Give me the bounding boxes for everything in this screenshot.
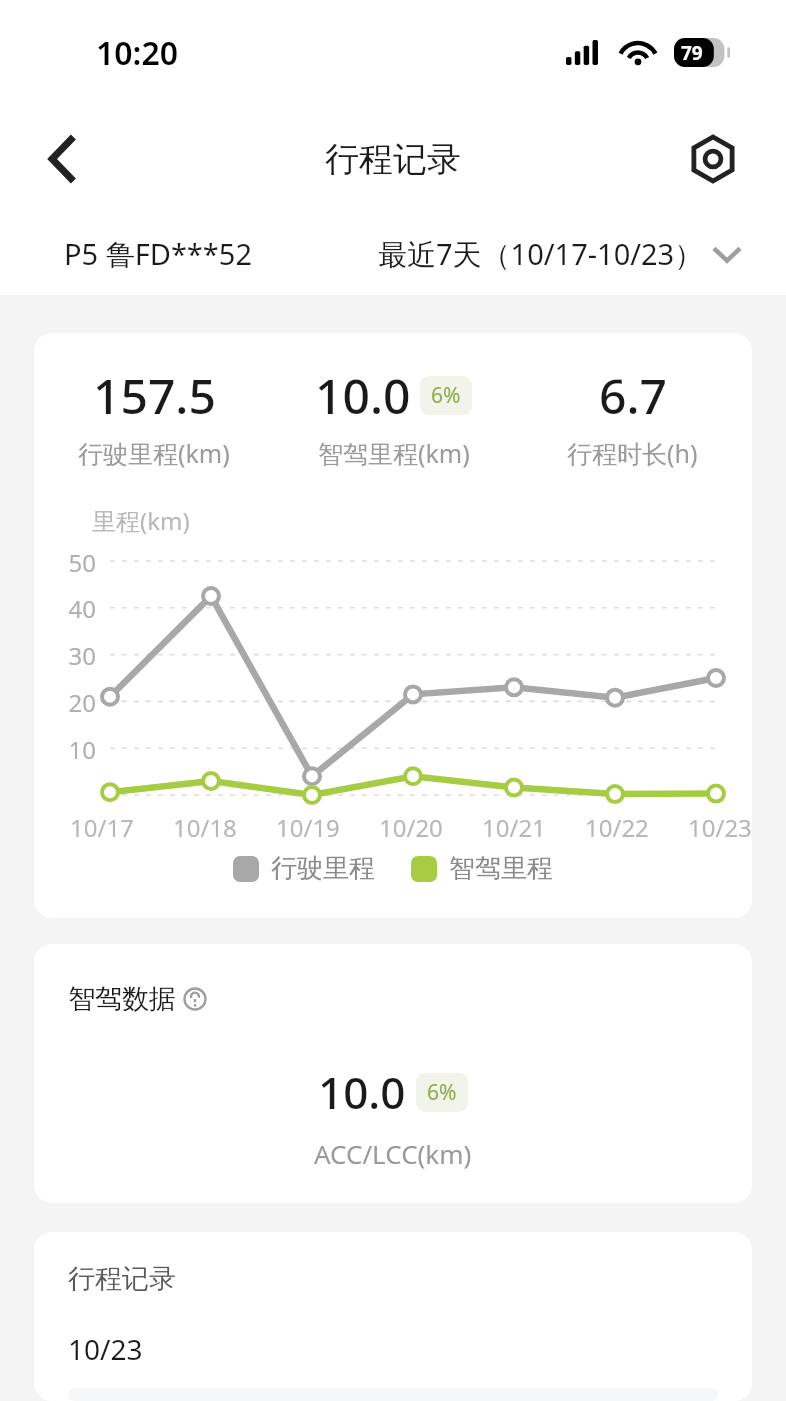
staticText: 里程(km) — [92, 504, 190, 537]
staticText: 行驶里程 — [271, 852, 375, 885]
staticText: 智驾里程 — [449, 852, 553, 885]
button[interactable]: Settings — [684, 130, 742, 188]
button[interactable]: 10.0 — [274, 363, 513, 470]
staticText: 10/18 — [173, 811, 237, 844]
staticText: 10/23 — [688, 811, 752, 844]
staticText: 最近7天（10/17-10/23） — [378, 234, 704, 274]
staticText: 50 — [34, 546, 96, 579]
button[interactable]: 智驾里程 — [411, 852, 553, 885]
button[interactable]: 智驾数据 — [68, 982, 207, 1016]
staticText: 10.0 — [318, 1062, 406, 1122]
staticText: 10/20 — [379, 811, 443, 844]
staticText: 10/19 — [276, 811, 340, 844]
button[interactable]: 行驶里程 — [233, 852, 375, 885]
staticText: 30 — [34, 639, 96, 672]
button[interactable]: 157.5 — [34, 363, 274, 470]
staticText: ACC/LCC(km) — [314, 1136, 472, 1171]
button[interactable]: P5 鲁FD***52 — [64, 234, 253, 274]
staticText: 10/23 — [68, 1330, 143, 1368]
staticText: 79 — [681, 40, 703, 66]
staticText: 20 — [34, 686, 96, 719]
staticText: 10.0 — [315, 363, 411, 428]
staticText: 6.7 — [599, 363, 667, 428]
staticText: 行程时长(h) — [567, 436, 698, 470]
staticText: 智驾里程(km) — [318, 436, 470, 470]
button[interactable]: 最近7天（10/17-10/23） — [378, 234, 740, 274]
staticText: 6% — [427, 1078, 457, 1107]
button[interactable]: 6.7 — [513, 363, 752, 470]
staticText: 行驶里程(km) — [78, 436, 230, 470]
staticText: 10/22 — [585, 811, 649, 844]
staticText: 10 — [34, 733, 96, 766]
button[interactable]: Back — [34, 130, 92, 188]
staticText: 行程记录 — [68, 1262, 176, 1296]
staticText: 10/17 — [70, 811, 134, 844]
staticText: 行程记录 — [325, 138, 461, 181]
staticText: 6% — [431, 381, 461, 410]
staticText: 40 — [34, 592, 96, 625]
staticText: 157.5 — [93, 363, 216, 428]
staticText: 10:20 — [96, 31, 179, 75]
staticText: 10/21 — [482, 811, 546, 844]
staticText: 智驾数据 — [68, 982, 176, 1016]
